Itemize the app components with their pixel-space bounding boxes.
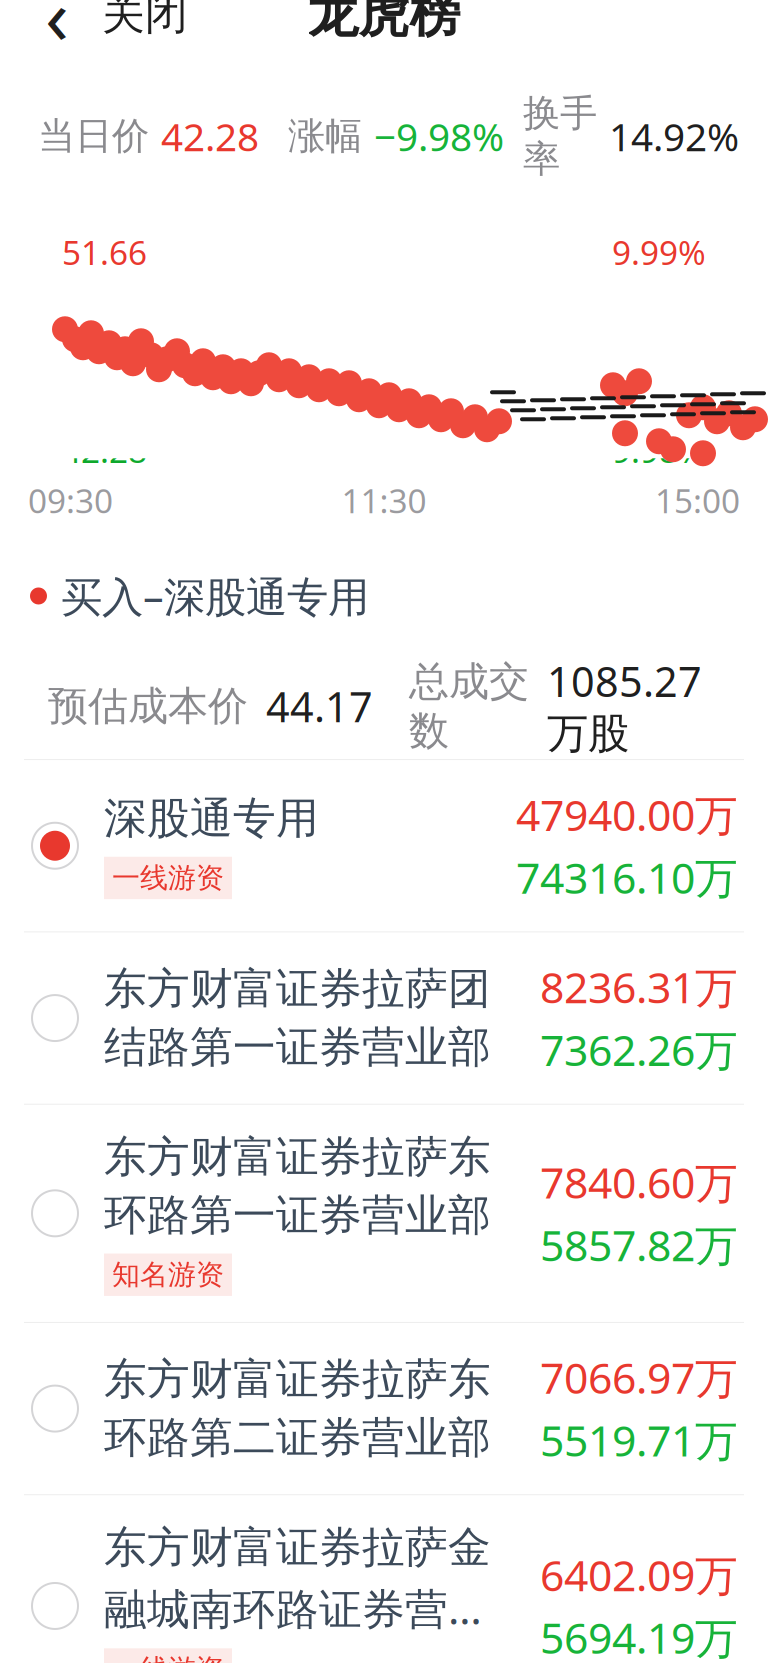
staticText: −9.98% <box>593 428 706 472</box>
staticText: 东方财富证券拉萨金 <box>104 1521 491 1574</box>
staticText: 买入–深股通专用 <box>61 568 369 623</box>
staticText: 7362.26万 <box>540 1021 738 1078</box>
button[interactable]: 关闭 <box>88 0 202 49</box>
staticText: 结路第一证券营业部 <box>104 1021 491 1073</box>
staticText: 5857.82万 <box>540 1216 738 1273</box>
staticText: 47940.00万 <box>516 786 738 843</box>
staticText: 龙虎榜 <box>307 0 460 45</box>
staticText: 总成交数 <box>409 657 529 755</box>
staticText: 深股通专用 <box>104 792 319 845</box>
button[interactable]: 东方财富证券拉萨金 <box>0 1495 768 1663</box>
staticText: 11:30 <box>341 478 426 523</box>
staticText: 一线游资 <box>112 861 224 895</box>
staticText: 51.66 <box>62 230 147 274</box>
staticText: 15:00 <box>655 478 740 523</box>
staticText: 东方财富证券拉萨东 <box>104 1353 491 1406</box>
staticText: 1085.27万股 <box>547 653 702 759</box>
staticText: 涨幅 <box>288 113 362 159</box>
staticText: 46.97 <box>62 312 147 357</box>
staticText: 42.28 <box>161 110 259 162</box>
staticText: 9.99% <box>612 230 706 274</box>
button[interactable]: Back <box>26 0 88 49</box>
button[interactable]: 深股通专用 <box>0 760 768 931</box>
staticText: 东方财富证券拉萨东 <box>104 1131 491 1183</box>
staticText: 7066.97万 <box>540 1349 738 1406</box>
staticText: 一线游资 <box>112 1652 224 1663</box>
staticText: ‹ <box>45 0 69 66</box>
button[interactable]: 东方财富证券拉萨东 <box>0 1323 768 1494</box>
staticText: 44.17 <box>266 679 373 734</box>
staticText: 预估成本价 <box>48 682 248 731</box>
staticText: 42.28 <box>62 428 147 472</box>
staticText: 融城南环路证券营… <box>104 1580 482 1636</box>
staticText: 关闭 <box>102 0 188 40</box>
staticText: 74316.10万 <box>516 849 738 905</box>
staticText: 知名游资 <box>112 1257 224 1292</box>
staticText: 东方财富证券拉萨团 <box>104 963 491 1015</box>
staticText: 环路第二证券营业部 <box>104 1412 491 1464</box>
staticText: 7840.60万 <box>540 1154 738 1210</box>
staticText: 环路第一证券营业部 <box>104 1189 491 1241</box>
button[interactable]: 东方财富证券拉萨东 <box>0 1105 768 1322</box>
staticText: 8236.31万 <box>540 958 738 1015</box>
staticText: 5694.19万 <box>540 1609 738 1663</box>
staticText: 换手率 <box>523 90 597 182</box>
button[interactable]: 东方财富证券拉萨团 <box>0 932 768 1104</box>
staticText: 5519.71万 <box>540 1412 738 1468</box>
staticText: −9.98% <box>374 110 504 162</box>
staticText: 当日价 <box>38 113 149 159</box>
staticText: 6402.09万 <box>540 1546 738 1603</box>
staticText: 09:30 <box>28 478 113 523</box>
staticText: 14.92% <box>609 110 739 162</box>
